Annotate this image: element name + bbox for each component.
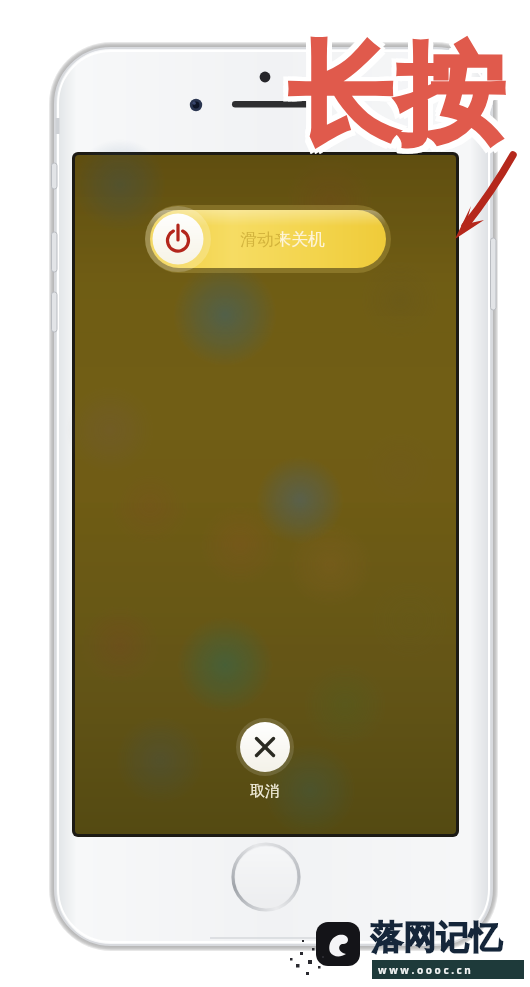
button[interactable]: Long press power to slide to power off: [0, 0, 530, 987]
